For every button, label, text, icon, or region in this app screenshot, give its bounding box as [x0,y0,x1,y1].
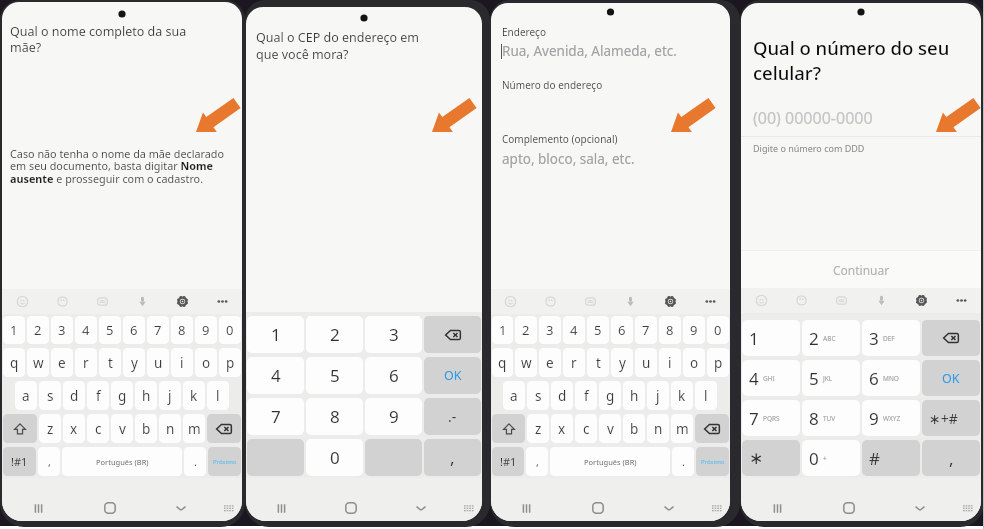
button[interactable]: v [599,414,621,443]
button[interactable]: . [184,447,206,476]
button[interactable]: g [111,381,133,410]
button[interactable]: y [123,348,145,377]
button[interactable]: 4 [742,360,800,396]
button[interactable]: p [219,348,241,377]
button[interactable]: m [671,414,693,443]
button[interactable]: More options [690,289,730,314]
button[interactable]: 1 [492,316,513,344]
button[interactable]: 9 [195,316,217,344]
button[interactable]: 7 [742,400,800,436]
button[interactable]: Keyboard layout [704,500,730,516]
button[interactable]: , [526,447,548,476]
button[interactable]: w [27,348,49,377]
button[interactable]: d [551,381,573,410]
button[interactable]: c [87,414,109,443]
button[interactable]: 6 [365,357,422,394]
button[interactable]: Voice input [861,288,901,313]
button[interactable]: !#1 [3,447,36,476]
button[interactable]: 0 [707,316,729,344]
button[interactable]: Backspace [207,414,241,443]
button[interactable]: 0 [306,439,363,476]
button[interactable]: n [159,414,181,443]
button[interactable]: Emoji [741,288,781,313]
button[interactable]: 1 [742,320,800,356]
button[interactable]: Keyboard settings [650,289,690,314]
button[interactable]: More options [941,288,981,313]
button[interactable]: 0 [219,316,241,344]
button[interactable]: Hide keyboard [884,500,955,516]
button[interactable]: Recent apps [2,500,74,516]
button[interactable]: b [135,414,157,443]
button[interactable]: , [922,440,980,476]
button[interactable]: Backspace [922,320,980,356]
button[interactable]: w [515,348,537,377]
button[interactable]: v [111,414,133,443]
button[interactable]: f [575,381,597,410]
button[interactable]: f [87,381,109,410]
button[interactable]: GIF [821,288,861,313]
button[interactable]: 4 [563,316,585,344]
button[interactable]: q [492,348,513,377]
button[interactable]: q [3,348,25,377]
button[interactable]: 2 [515,316,537,344]
button[interactable]: 3 [365,316,422,353]
button[interactable]: Hide keyboard [386,500,456,516]
button[interactable]: 3 [862,320,920,356]
button[interactable]: Próximo [696,447,729,476]
button[interactable]: 7 [247,398,304,435]
button[interactable]: Home [74,500,145,516]
button[interactable]: u [635,348,657,377]
button[interactable]: 5 [306,357,363,394]
button[interactable]: Keyboard settings [901,288,941,313]
button[interactable]: , [38,447,60,476]
button[interactable]: Keyboard settings [162,289,202,314]
button[interactable]: GIF [570,289,610,314]
button[interactable]: Home [813,500,884,516]
button[interactable]: 8 [802,400,860,436]
button[interactable]: ∗ [742,440,800,476]
button[interactable]: d [63,381,85,410]
button[interactable]: Português (BR) [62,447,182,476]
button[interactable]: 5 [99,316,121,344]
button[interactable]: y [611,348,633,377]
button[interactable]: Próximo [208,447,241,476]
button[interactable]: Stickers [781,288,821,313]
button[interactable]: 0 [802,440,860,476]
button[interactable]: z [39,414,61,443]
button[interactable]: j [159,381,181,410]
button[interactable]: p [707,348,729,377]
button[interactable]: 9 [365,398,422,435]
button[interactable]: 6 [611,316,633,344]
button[interactable]: 3 [51,316,73,344]
button[interactable]: o [195,348,217,377]
button[interactable]: Stickers [530,289,570,314]
button[interactable]: Recent apps [491,500,562,516]
button[interactable]: !#1 [492,447,524,476]
button[interactable]: 1 [247,316,304,353]
button[interactable]: h [135,381,157,410]
button[interactable]: Shift [492,414,525,443]
button[interactable]: e [539,348,561,377]
button[interactable]: c [575,414,597,443]
button[interactable]: Emoji [491,289,530,314]
button[interactable]: Shift [3,414,37,443]
button[interactable]: GIF [82,289,122,314]
button[interactable]: Recent apps [246,500,316,516]
button[interactable]: Voice input [122,289,162,314]
button[interactable]: Keyboard layout [955,500,981,516]
button[interactable]: Português (BR) [550,447,670,476]
button[interactable]: l [207,381,229,410]
button[interactable]: Keyboard layout [456,500,482,516]
button[interactable]: t [99,348,121,377]
button[interactable]: s [39,381,61,410]
button[interactable]: r [75,348,97,377]
button[interactable]: t [587,348,609,377]
button[interactable]: Hide keyboard [145,500,216,516]
button[interactable]: 6 [862,360,920,396]
button[interactable]: , [424,439,481,476]
button[interactable]: Keyboard layout [216,500,242,516]
button[interactable]: 1 [3,316,25,344]
button[interactable]: Backspace [695,414,729,443]
button[interactable]: Continuar [741,251,981,288]
button[interactable]: . [672,447,694,476]
